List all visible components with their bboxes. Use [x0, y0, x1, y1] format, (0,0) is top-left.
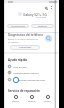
- staticText: Ayuda rápida: [8, 58, 28, 62]
- staticText: Administración remota: [13, 71, 39, 74]
- button[interactable]: Administración remota: [8, 69, 59, 76]
- button[interactable]: Registrar: [31, 24, 54, 28]
- staticText: Comprobar: [19, 46, 32, 49]
- staticText: Registrar: [38, 25, 47, 28]
- staticText: Revise si hay algún problema en: [8, 38, 39, 41]
- button[interactable]: More options: [49, 6, 53, 10]
- staticText: Soporte: [12, 100, 19, 102]
- staticText: SM-G996B: [23, 16, 59, 19]
- staticText: Mis productos: [11, 25, 25, 28]
- staticText: Diagnóstico del teléfono: [8, 33, 43, 37]
- staticText: su teléfono: [8, 41, 19, 44]
- button[interactable]: Soporte: [11, 95, 20, 102]
- staticText: Enviar informe de error: [19, 78, 46, 81]
- button[interactable]: Enviar informe de error: [8, 76, 59, 83]
- button[interactable]: Mis productos: [7, 24, 29, 28]
- staticText: Reservar: [28, 100, 36, 102]
- staticText: Galaxy S21+ 5G: [23, 12, 47, 16]
- staticText: Chat en vivo: [13, 65, 27, 68]
- button[interactable]: Search: [44, 6, 48, 10]
- button[interactable]: Comprobar: [10, 45, 40, 50]
- staticText: Servicio de reparación: [8, 89, 40, 93]
- button[interactable]: Centros: [43, 95, 52, 102]
- staticText: Centros: [44, 100, 51, 102]
- button[interactable]: Chat en vivo: [8, 63, 59, 70]
- button[interactable]: Reservar: [27, 95, 37, 102]
